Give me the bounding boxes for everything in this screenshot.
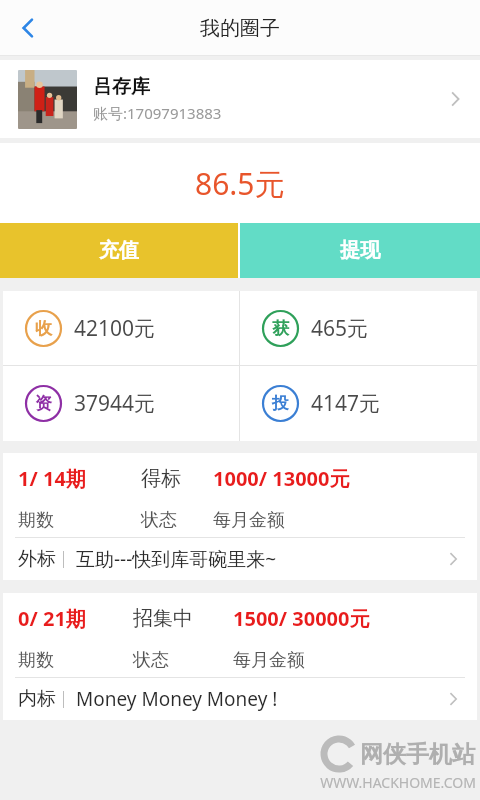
- staticText: 吕存库: [93, 75, 150, 99]
- staticText: WWW.HACKHOME.COM: [320, 773, 476, 792]
- button[interactable]: 吕存库: [0, 60, 480, 138]
- staticText: 内标: [18, 687, 56, 711]
- staticText: 招集中: [133, 606, 193, 631]
- staticText: 465元: [311, 314, 369, 343]
- button[interactable]: 获: [240, 291, 477, 365]
- button[interactable]: 0/ 21期: [3, 593, 477, 720]
- button[interactable]: 充值: [0, 223, 238, 278]
- button[interactable]: Back: [0, 0, 56, 56]
- staticText: 状态: [133, 649, 169, 672]
- staticText: 期数: [18, 649, 54, 672]
- staticText: 互助---快到库哥碗里来~: [76, 546, 445, 572]
- staticText: 状态: [141, 509, 177, 532]
- staticText: 收: [35, 318, 52, 339]
- button[interactable]: 资: [3, 366, 239, 441]
- staticText: 37944元: [74, 389, 156, 418]
- staticText: 1500/ 30000元: [233, 605, 370, 632]
- staticText: 4147元: [311, 389, 381, 418]
- staticText: 42100元: [74, 314, 156, 343]
- staticText: 获: [272, 318, 289, 339]
- staticText: 期数: [18, 509, 54, 532]
- staticText: 得标: [141, 466, 181, 491]
- staticText: 1000/ 13000元: [213, 465, 350, 492]
- staticText: 充值: [99, 238, 139, 263]
- staticText: Money Money Money !: [76, 686, 445, 712]
- staticText: 账号:17097913883: [93, 103, 222, 123]
- staticText: 资: [35, 393, 52, 414]
- staticText: 每月金额: [233, 649, 305, 672]
- button[interactable]: 1/ 14期: [3, 453, 477, 580]
- button[interactable]: 收: [3, 291, 239, 365]
- staticText: 每月金额: [213, 509, 285, 532]
- button[interactable]: 投: [240, 366, 477, 441]
- staticText: 外标: [18, 547, 56, 571]
- staticText: 0/ 21期: [18, 605, 86, 632]
- staticText: 投: [272, 393, 289, 414]
- staticText: 提现: [340, 238, 380, 263]
- staticText: 1/ 14期: [18, 465, 86, 492]
- staticText: 我的圈子: [200, 16, 280, 41]
- button[interactable]: 提现: [240, 223, 480, 278]
- staticText: 网侠手机站: [360, 740, 475, 769]
- staticText: 86.5元: [195, 163, 285, 204]
